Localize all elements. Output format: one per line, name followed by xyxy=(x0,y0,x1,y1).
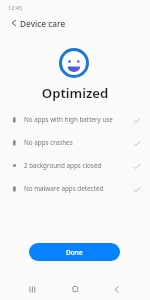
staticText: No malware apps detected xyxy=(24,184,104,193)
button[interactable]: No apps crashes xyxy=(0,131,150,154)
button[interactable]: Back xyxy=(2,15,23,31)
staticText: 2 background apps closed xyxy=(24,161,102,170)
button[interactable]: Recent apps xyxy=(22,281,43,298)
staticText: Optimized xyxy=(0,84,150,102)
button[interactable]: No malware apps detected xyxy=(0,177,150,200)
staticText: No apps crashes xyxy=(24,138,73,147)
button[interactable]: Home xyxy=(65,281,86,298)
staticText: 12:45 xyxy=(8,4,23,11)
button[interactable]: Done xyxy=(29,243,120,261)
staticText: Done xyxy=(66,248,83,257)
staticText: No apps with high battery use xyxy=(24,115,113,124)
button[interactable]: 2 background apps closed xyxy=(0,154,150,177)
staticText: Device care xyxy=(20,18,66,29)
button[interactable]: Back xyxy=(106,281,127,298)
button[interactable]: No apps with high battery use xyxy=(0,108,150,131)
